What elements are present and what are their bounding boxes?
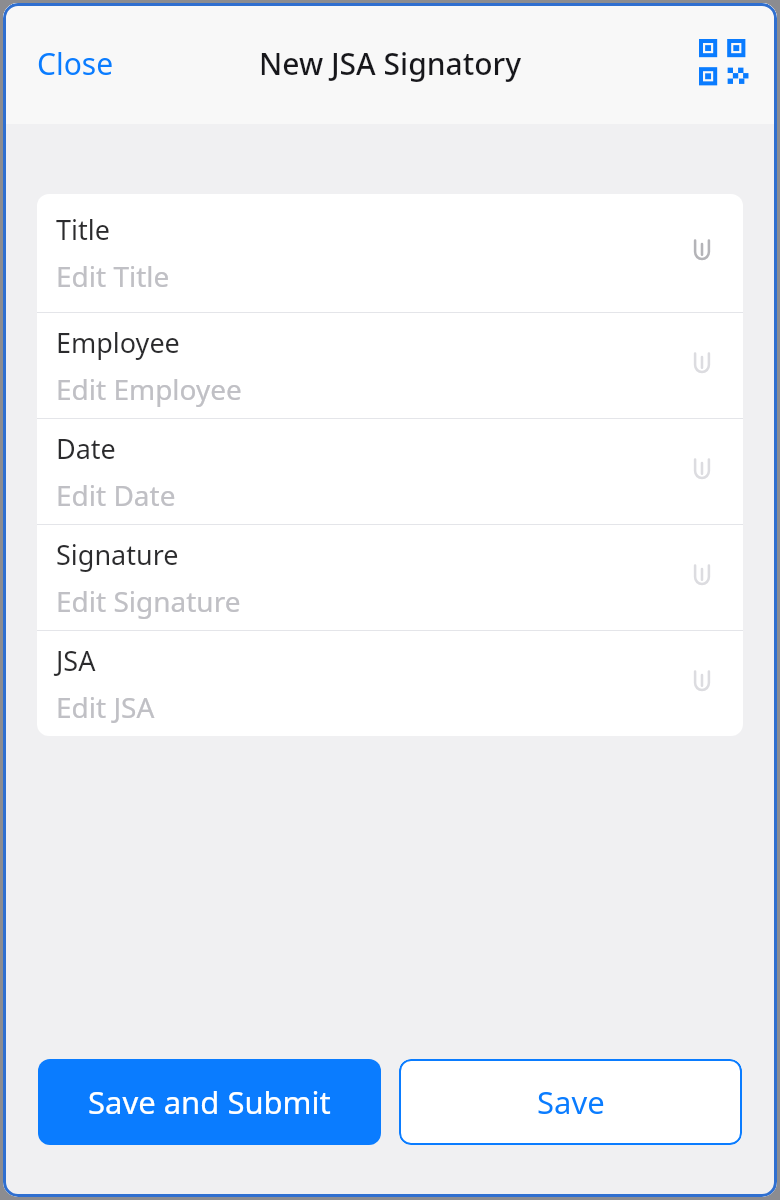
button[interactable]: Save <box>399 1059 742 1145</box>
staticText: JSA <box>56 642 96 679</box>
other: Attach file to Employee <box>681 345 723 387</box>
button[interactable]: Scan QR code <box>693 33 755 95</box>
button[interactable]: Save and Submit <box>38 1059 381 1145</box>
staticText: New JSA Signatory <box>259 43 522 84</box>
staticText: Close <box>37 43 114 84</box>
staticText: Edit Title <box>56 257 170 295</box>
button[interactable]: Date <box>37 419 743 524</box>
other: Attach file to Title <box>681 232 723 274</box>
button[interactable]: Signature <box>37 525 743 630</box>
staticText: Employee <box>56 324 180 361</box>
other: Attach file to Date <box>681 451 723 493</box>
button[interactable]: Title <box>37 194 743 312</box>
button[interactable]: Employee <box>37 313 743 418</box>
staticText: Edit JSA <box>56 688 155 726</box>
staticText: Edit Employee <box>56 370 242 408</box>
staticText: Edit Signature <box>56 582 241 620</box>
staticText: Signature <box>56 536 179 573</box>
other: Attach file to JSA <box>681 663 723 705</box>
staticText: Save <box>537 1081 605 1123</box>
button[interactable]: JSA <box>37 631 743 736</box>
other: Attach file to Signature <box>681 557 723 599</box>
staticText: Title <box>56 211 110 248</box>
button[interactable]: Close <box>23 33 128 94</box>
staticText: Date <box>56 430 116 467</box>
staticText: Save and Submit <box>88 1081 331 1123</box>
staticText: Edit Date <box>56 476 176 514</box>
